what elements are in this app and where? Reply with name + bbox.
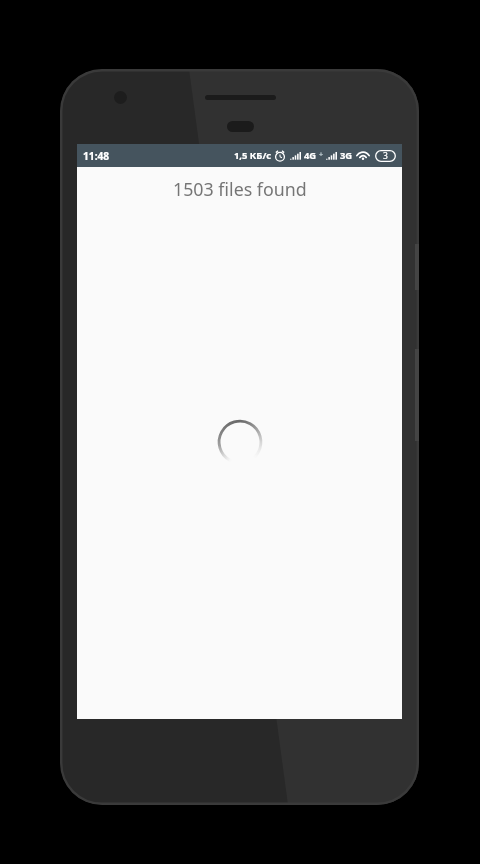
staticText: 3G [340, 149, 353, 162]
staticText: 11:48 [83, 149, 110, 163]
staticText: 4G [304, 149, 317, 162]
staticText: 3 [383, 150, 388, 162]
staticText: + [319, 150, 324, 160]
staticText: 1503 files found [173, 177, 307, 201]
staticText: 1,5 КБ/с [234, 149, 272, 162]
